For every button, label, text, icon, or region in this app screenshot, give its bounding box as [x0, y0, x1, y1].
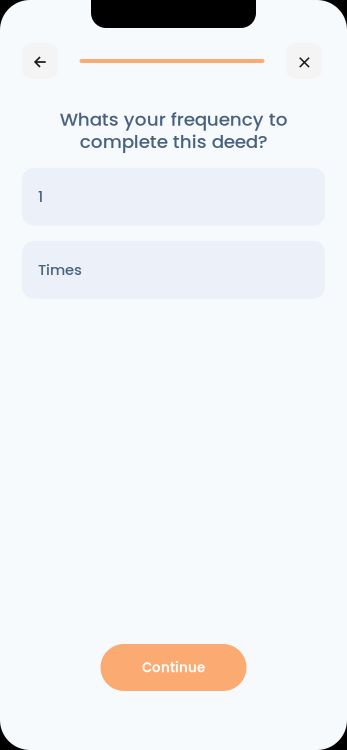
button[interactable]: Continue — [100, 644, 246, 691]
button[interactable]: 1 — [22, 168, 325, 226]
staticText: 1 — [38, 187, 43, 207]
staticText: Whats your frequency to complete this de… — [59, 108, 287, 153]
staticText: Continue — [142, 658, 205, 677]
button[interactable]: Times — [22, 241, 325, 299]
button[interactable]: Back — [22, 43, 58, 79]
button[interactable]: Close — [286, 43, 322, 79]
staticText: Times — [38, 260, 82, 280]
